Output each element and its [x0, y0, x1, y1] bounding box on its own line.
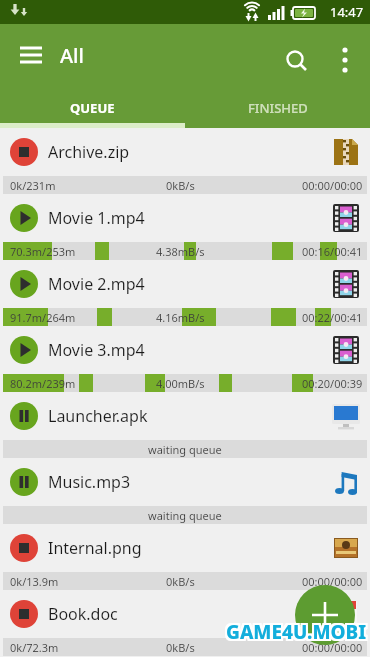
staticText: 0kB/s: [166, 640, 195, 655]
button[interactable]: [10, 204, 38, 232]
button[interactable]: QUEUE: [0, 88, 185, 128]
staticText: GAME4U.MOBI: [224, 617, 365, 643]
staticText: 0k/13.9m: [10, 574, 59, 589]
button[interactable]: [10, 468, 38, 496]
staticText: Movie 2.mp4: [48, 273, 145, 295]
staticText: waiting queue: [148, 508, 222, 523]
staticText: 00:00/00:00: [302, 640, 363, 655]
staticText: 70.3m/253m: [10, 244, 76, 259]
staticText: 00:16/00:41: [302, 244, 363, 259]
button[interactable]: FINISHED: [185, 88, 370, 128]
staticText: Archive.zip: [48, 141, 130, 163]
staticText: 00:00/00:00: [302, 574, 363, 589]
staticText: 0kB/s: [166, 178, 195, 193]
staticText: 0kB/s: [166, 574, 195, 589]
staticText: GAME4U.MOBI: [224, 619, 365, 645]
staticText: 4.00mB/s: [156, 376, 205, 391]
staticText: Music.mp3: [48, 471, 131, 493]
button[interactable]: [10, 402, 38, 430]
button[interactable]: Archive.zip: [0, 128, 370, 176]
staticText: waiting queue: [148, 442, 222, 457]
staticText: GAME4U.MOBI: [226, 621, 367, 647]
staticText: 14:47: [330, 3, 364, 21]
staticText: 00:22/00:41: [302, 310, 363, 325]
staticText: 4.16mB/s: [156, 310, 205, 325]
staticText: Internal.png: [48, 537, 142, 559]
staticText: 4.38mB/s: [156, 244, 205, 259]
button[interactable]: Music.mp3: [0, 458, 370, 506]
staticText: GAME4U.MOBI: [228, 617, 369, 643]
staticText: GAME4U.MOBI: [228, 621, 369, 647]
staticText: GAME4U.MOBI: [224, 621, 365, 647]
staticText: QUEUE: [70, 99, 115, 117]
button[interactable]: [10, 336, 38, 364]
staticText: 00:20/00:39: [302, 376, 363, 391]
staticText: 91.7m/264m: [10, 310, 76, 325]
button[interactable]: Launcher.apk: [0, 392, 370, 440]
staticText: Book.doc: [48, 603, 118, 625]
staticText: Launcher.apk: [48, 405, 148, 427]
staticText: 80.2m/239m: [10, 376, 76, 391]
staticText: GAME4U.MOBI: [226, 619, 367, 645]
staticText: GAME4U.MOBI: [228, 619, 369, 645]
button[interactable]: Movie 3.mp4: [0, 326, 370, 374]
button[interactable]: [295, 585, 355, 645]
button[interactable]: [10, 138, 38, 166]
staticText: 00:00/00:00: [302, 178, 363, 193]
button[interactable]: Book.doc: [0, 590, 370, 638]
staticText: FINISHED: [248, 99, 308, 117]
staticText: Movie 3.mp4: [48, 339, 145, 361]
button[interactable]: Movie 1.mp4: [0, 194, 370, 242]
button[interactable]: [330, 44, 362, 76]
staticText: 0k/231m: [10, 178, 56, 193]
staticText: GAME4U.MOBI: [226, 617, 367, 643]
button[interactable]: [12, 44, 50, 70]
button[interactable]: Movie 2.mp4: [0, 260, 370, 308]
staticText: 0k/72.3m: [10, 640, 59, 655]
button[interactable]: [279, 44, 315, 80]
staticText: Movie 1.mp4: [48, 207, 145, 229]
button[interactable]: [10, 600, 38, 628]
button[interactable]: Internal.png: [0, 524, 370, 572]
staticText: All: [60, 42, 84, 69]
button[interactable]: [10, 270, 38, 298]
button[interactable]: [10, 534, 38, 562]
